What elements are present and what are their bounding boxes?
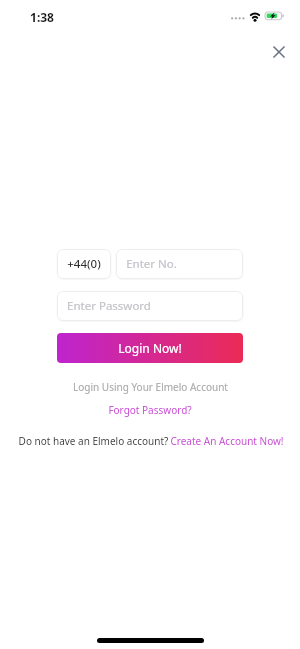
staticText: Do not have an Elmelo account? [17, 434, 170, 448]
staticText: Enter Password [67, 298, 151, 314]
button[interactable]: +44(0) [57, 249, 111, 279]
staticText: Login Using Your Elmelo Account [73, 380, 228, 394]
button[interactable]: Forgot Password? [108, 403, 192, 417]
staticText: Login Now! [118, 340, 182, 356]
staticText: Forgot Password? [108, 403, 192, 417]
staticText: Create An Account Now! [170, 434, 284, 448]
button[interactable]: Enter Password [67, 291, 243, 321]
button[interactable]: Enter No. [126, 249, 243, 279]
button[interactable]: Login Now! [57, 333, 243, 363]
button[interactable]: Create An Account Now! [170, 434, 284, 448]
staticText: 1:38 [30, 9, 54, 25]
staticText: Enter No. [126, 256, 177, 272]
staticText: +44(0) [67, 256, 101, 272]
button[interactable]: Close [266, 39, 292, 65]
